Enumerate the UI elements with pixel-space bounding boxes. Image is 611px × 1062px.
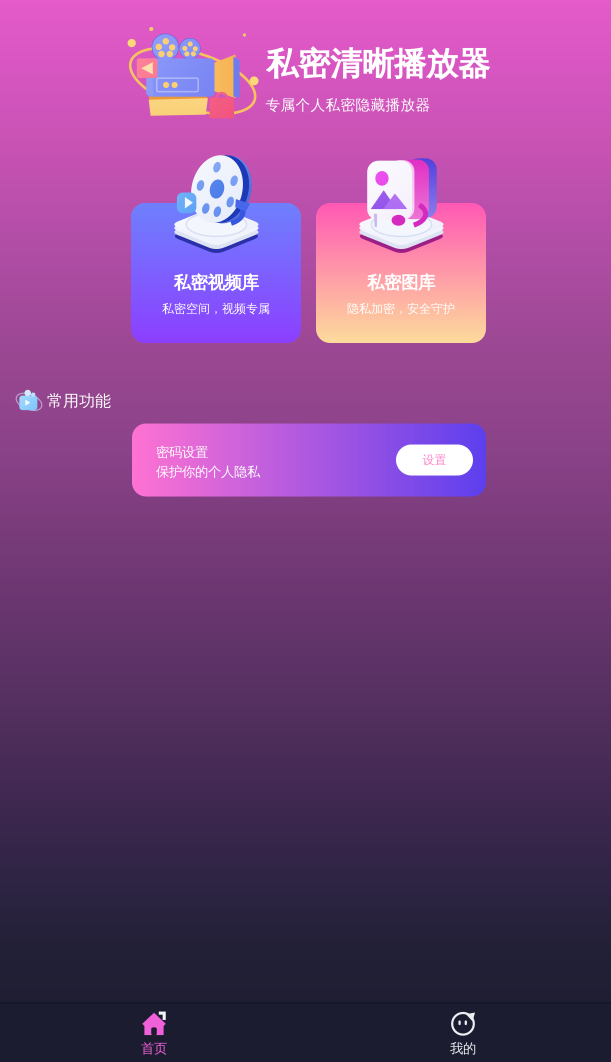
button[interactable]: 私密视频库	[131, 203, 301, 343]
staticText: 私密图库	[367, 272, 435, 293]
button[interactable]: 私密图库	[316, 203, 486, 343]
staticText: 私密清晰播放器	[266, 44, 490, 84]
staticText: 密码设置	[156, 444, 208, 460]
staticText: 我的	[450, 1040, 476, 1057]
staticText: 专属个人私密隐藏播放器	[265, 96, 430, 114]
staticText: 设置	[422, 453, 446, 467]
staticText: 常用功能	[47, 391, 111, 411]
button[interactable]: 我的	[403, 1004, 523, 1062]
button[interactable]: 设置	[396, 444, 473, 475]
staticText: 私密空间，视频专属	[162, 301, 270, 316]
button[interactable]: 首页	[94, 1004, 214, 1062]
staticText: 保护你的个人隐私	[156, 463, 260, 480]
staticText: 隐私加密，安全守护	[347, 301, 455, 316]
staticText: 私密视频库	[173, 272, 258, 293]
staticText: 首页	[141, 1040, 167, 1057]
